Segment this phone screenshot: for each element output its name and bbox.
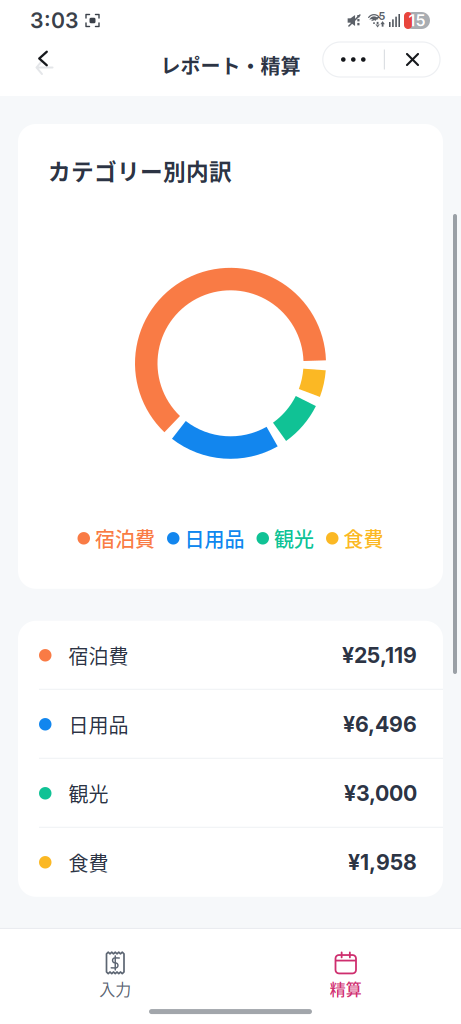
staticText: 15 <box>408 11 425 30</box>
button[interactable]: Close <box>385 42 440 77</box>
staticText: 宿泊費 <box>68 641 128 670</box>
button[interactable]: More options <box>323 42 384 77</box>
button[interactable]: 入力 <box>0 938 230 1009</box>
staticText: 3:03 <box>30 8 79 33</box>
button[interactable]: 観光 <box>18 759 443 828</box>
staticText: レポート・精算 <box>160 50 300 79</box>
staticText: 日用品 <box>184 524 244 553</box>
staticText: 観光 <box>274 524 314 553</box>
staticText: ¥6,496 <box>343 711 417 737</box>
button[interactable]: 精算 <box>230 938 461 1009</box>
staticText: 日用品 <box>68 710 128 739</box>
staticText: ¥25,119 <box>342 642 417 668</box>
staticText: 食費 <box>343 524 383 553</box>
staticText: ¥1,958 <box>348 849 417 875</box>
button[interactable]: Back <box>21 37 65 81</box>
staticText: 観光 <box>68 779 108 808</box>
staticText: 食費 <box>68 848 108 877</box>
staticText: ¥3,000 <box>344 780 417 806</box>
staticText: 精算 <box>330 977 362 1000</box>
staticText: 入力 <box>99 977 131 1000</box>
staticText: 宿泊費 <box>95 524 155 553</box>
button[interactable]: 宿泊費 <box>18 621 443 690</box>
staticText: 5 <box>378 10 385 22</box>
button[interactable]: 食費 <box>18 828 443 897</box>
button[interactable]: 日用品 <box>18 690 443 759</box>
staticText: カテゴリー別内訳 <box>48 154 232 187</box>
